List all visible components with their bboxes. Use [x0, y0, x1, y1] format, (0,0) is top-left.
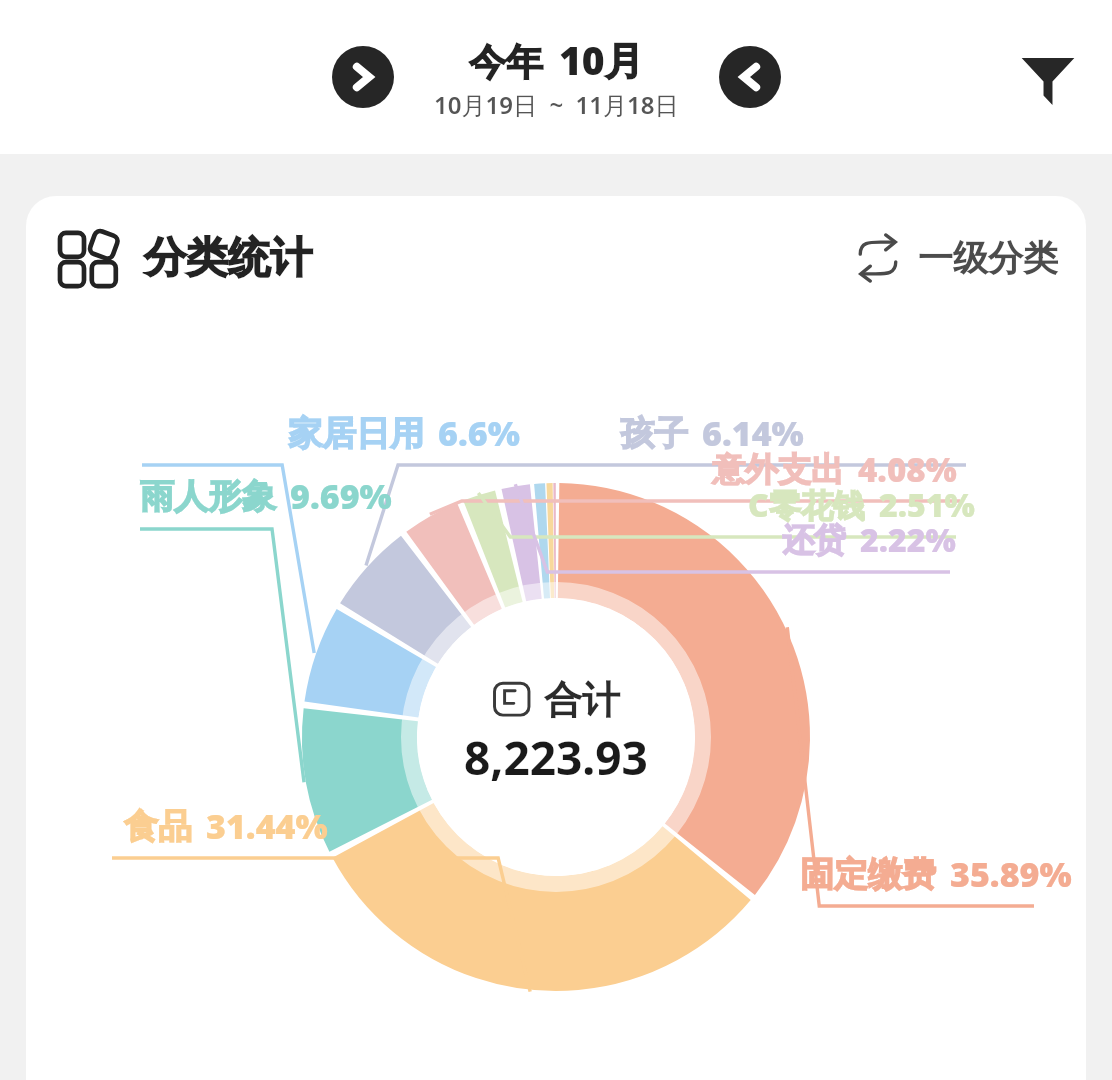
- staticText: 2.51%: [879, 483, 975, 527]
- staticText: 分类统计: [144, 232, 312, 285]
- staticText: 10月: [559, 33, 644, 86]
- staticText: 2.22%: [860, 518, 956, 562]
- staticText: 一级分类: [918, 236, 1058, 280]
- button[interactable]: Previous period: [332, 46, 394, 108]
- staticText: 6.14%: [702, 410, 804, 456]
- staticText: 雨人形象: [140, 475, 276, 518]
- staticText: 食品: [124, 805, 192, 848]
- staticText: 孩子: [620, 412, 688, 455]
- staticText: C零花钱: [748, 483, 865, 527]
- staticText: 4.08%: [858, 447, 957, 492]
- button[interactable]: 雨人形象: [140, 473, 392, 519]
- staticText: 35.89%: [950, 851, 1072, 897]
- button[interactable]: 意外支出: [712, 447, 957, 492]
- button[interactable]: 家居日用: [288, 410, 520, 456]
- staticText: 今年: [469, 39, 543, 86]
- staticText: 合计: [544, 676, 620, 724]
- staticText: 8,223.93: [464, 726, 648, 789]
- staticText: 10月19日 ~ 11月18日: [434, 88, 679, 121]
- button[interactable]: 分类统计: [60, 228, 312, 288]
- staticText: 9.69%: [290, 473, 392, 519]
- staticText: 固定缴费: [800, 853, 936, 896]
- staticText: 31.44%: [206, 803, 328, 849]
- button[interactable]: Next period: [719, 46, 781, 108]
- button[interactable]: C零花钱: [748, 483, 975, 527]
- staticText: 家居日用: [288, 412, 424, 455]
- button[interactable]: 一级分类: [854, 234, 1058, 282]
- button[interactable]: Filter: [1010, 39, 1086, 115]
- button[interactable]: 孩子: [620, 410, 804, 456]
- button[interactable]: 还贷: [782, 518, 956, 562]
- staticText: 还贷: [782, 520, 846, 560]
- staticText: 6.6%: [438, 410, 520, 456]
- staticText: 意外支出: [712, 449, 844, 491]
- button[interactable]: 食品: [124, 803, 328, 849]
- button[interactable]: 固定缴费: [800, 851, 1072, 897]
